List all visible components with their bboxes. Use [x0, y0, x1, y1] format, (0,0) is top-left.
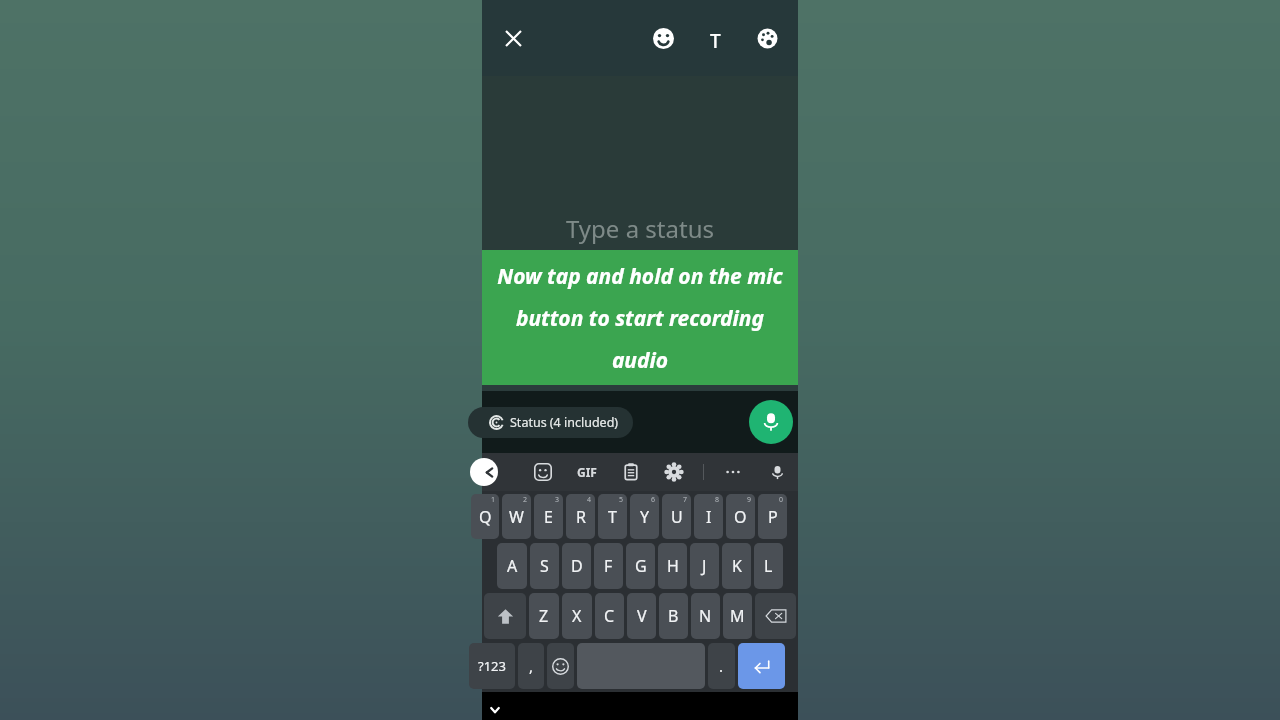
staticText: B	[668, 605, 679, 627]
staticText: K	[732, 555, 742, 577]
staticText: P	[768, 506, 778, 528]
button[interactable]: X	[562, 593, 592, 639]
staticText: GIF	[577, 464, 597, 480]
staticText: N	[699, 605, 712, 627]
button[interactable]: J	[690, 543, 719, 589]
staticText: T	[608, 506, 617, 528]
button[interactable]: W	[502, 494, 531, 539]
staticText: A	[507, 555, 518, 577]
button[interactable]: A	[497, 543, 527, 589]
staticText: ?123	[478, 657, 506, 675]
button[interactable]: More options	[718, 457, 748, 487]
button[interactable]: Close	[496, 21, 530, 55]
button[interactable]: Stickers	[528, 457, 558, 487]
button[interactable]: Back	[470, 458, 498, 486]
button[interactable]: Text	[698, 21, 732, 55]
button[interactable]: M	[723, 593, 752, 639]
button[interactable]: Enter	[738, 643, 785, 689]
button[interactable]: Status (4 included)	[468, 407, 633, 438]
staticText: W	[509, 506, 524, 528]
staticText: 4	[587, 495, 592, 505]
button[interactable]: ?123	[469, 643, 515, 689]
button[interactable]: Y	[630, 494, 659, 539]
staticText: M	[730, 605, 745, 627]
button[interactable]: G	[626, 543, 655, 589]
staticText: X	[572, 605, 582, 627]
button[interactable]: Drawing colour	[750, 21, 784, 55]
button[interactable]: S	[530, 543, 559, 589]
button[interactable]: H	[658, 543, 687, 589]
button[interactable]: N	[691, 593, 720, 639]
button[interactable]: Shift	[484, 593, 526, 639]
button[interactable]: O	[726, 494, 755, 539]
button[interactable]: D	[562, 543, 591, 589]
button[interactable]: Voice input	[762, 457, 792, 487]
staticText: D	[571, 555, 583, 577]
staticText: 7	[683, 495, 688, 505]
button[interactable]: C	[595, 593, 624, 639]
staticText: C	[604, 605, 615, 627]
staticText: E	[544, 506, 553, 528]
staticText: J	[702, 555, 707, 577]
button[interactable]: GIF	[571, 460, 603, 484]
staticText: Status (4 included)	[510, 414, 619, 431]
staticText: S	[540, 555, 549, 577]
staticText: Type a status	[566, 212, 714, 245]
staticText: 0	[779, 495, 784, 505]
button[interactable]: Emoji	[646, 21, 680, 55]
button[interactable]: Z	[529, 593, 559, 639]
staticText: Now tap and hold on the mic button to st…	[488, 262, 792, 374]
button[interactable]: .	[708, 643, 735, 689]
staticText: I	[706, 506, 712, 528]
staticText: 5	[619, 495, 624, 505]
button[interactable]: Emoji	[547, 643, 574, 689]
button[interactable]: V	[627, 593, 656, 639]
staticText: U	[671, 506, 683, 528]
button[interactable]: ,	[518, 643, 544, 689]
staticText: R	[576, 506, 586, 528]
button[interactable]: Q	[471, 494, 499, 539]
staticText: Y	[640, 506, 650, 528]
staticText: V	[637, 605, 647, 627]
button[interactable]: E	[534, 494, 563, 539]
button[interactable]: L	[754, 543, 783, 589]
staticText: 3	[555, 495, 560, 505]
button[interactable]: Settings	[659, 457, 689, 487]
staticText: 9	[747, 495, 752, 505]
staticText: Z	[539, 605, 549, 627]
staticText: 1	[491, 495, 496, 505]
staticText: ,	[529, 656, 534, 676]
staticText: T	[710, 28, 721, 49]
button[interactable]: Backspace	[755, 593, 796, 639]
button[interactable]: I	[694, 494, 723, 539]
button[interactable]: F	[594, 543, 623, 589]
staticText: O	[734, 506, 747, 528]
button[interactable]: K	[722, 543, 751, 589]
staticText: G	[635, 555, 647, 577]
button[interactable]: Clipboard	[616, 457, 646, 487]
staticText: H	[667, 555, 679, 577]
staticText: L	[764, 555, 773, 577]
button[interactable]: Record voice status	[749, 400, 793, 444]
staticText: .	[719, 656, 724, 676]
button[interactable]: R	[566, 494, 595, 539]
staticText: Q	[479, 506, 492, 528]
button[interactable]: P	[758, 494, 787, 539]
button[interactable]: T	[598, 494, 627, 539]
button[interactable]: Collapse	[486, 701, 504, 719]
staticText: F	[604, 555, 613, 577]
staticText: 6	[651, 495, 656, 505]
staticText: 8	[715, 495, 720, 505]
button[interactable]: B	[659, 593, 688, 639]
staticText: 2	[523, 495, 528, 505]
button[interactable]: U	[662, 494, 691, 539]
